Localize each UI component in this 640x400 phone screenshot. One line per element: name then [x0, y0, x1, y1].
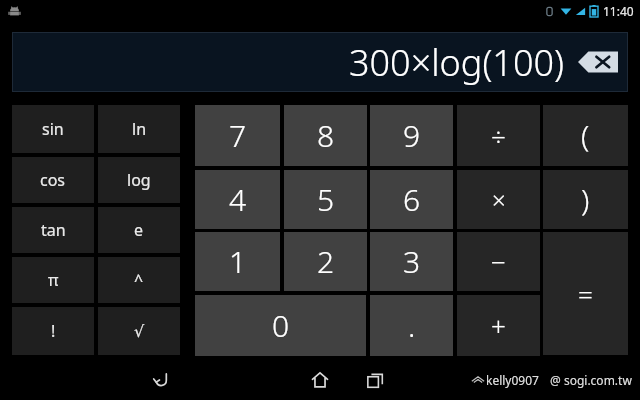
staticText: ÷ [491, 118, 506, 153]
staticText: 11:40 [603, 3, 634, 19]
button[interactable]: ( [543, 105, 628, 166]
staticText: × [492, 183, 506, 216]
staticText: ) [581, 179, 590, 220]
button[interactable]: cos [12, 157, 94, 203]
button[interactable]: ^ [98, 257, 180, 303]
button[interactable]: 9 [370, 105, 453, 166]
button[interactable]: 8 [284, 105, 367, 166]
staticText: 9 [403, 115, 421, 156]
button[interactable]: ln [98, 105, 180, 153]
button[interactable]: √ [98, 307, 180, 355]
staticText: √ [134, 322, 145, 341]
button[interactable]: × [457, 170, 540, 229]
staticText: 7 [229, 115, 247, 156]
staticText: 8 [317, 115, 335, 156]
staticText: 5 [317, 179, 335, 220]
staticText: sin [42, 118, 64, 140]
staticText: @ sogi.com.tw [550, 372, 632, 388]
button[interactable]: 2 [284, 232, 367, 291]
staticText: 1 [229, 241, 247, 282]
staticText: π [48, 269, 59, 291]
button[interactable]: 7 [195, 105, 280, 166]
button[interactable]: 6 [370, 170, 453, 229]
button[interactable]: = [543, 232, 628, 355]
staticText: ! [51, 320, 56, 342]
button[interactable]: Recent apps [353, 360, 397, 400]
button[interactable]: ÷ [457, 105, 540, 166]
button[interactable]: log [98, 157, 180, 203]
staticText: = [578, 276, 593, 311]
staticText: cos [40, 169, 66, 191]
staticText: 300×log(100) [349, 38, 564, 87]
button[interactable]: 5 [284, 170, 367, 229]
button[interactable]: 4 [195, 170, 280, 229]
button[interactable]: Backspace [578, 50, 618, 74]
button[interactable]: e [98, 207, 180, 253]
button[interactable]: + [457, 295, 540, 356]
staticText: 2 [317, 241, 335, 282]
button[interactable]: tan [12, 207, 94, 253]
button[interactable]: 1 [195, 232, 280, 291]
button[interactable]: Home [298, 360, 342, 400]
staticText: 4 [229, 179, 247, 220]
button[interactable]: Back [140, 360, 184, 400]
staticText: log [127, 169, 151, 191]
staticText: kelly0907 [486, 372, 539, 388]
button[interactable]: 0 [195, 295, 366, 356]
button[interactable]: π [12, 257, 94, 303]
staticText: e [134, 219, 144, 241]
button[interactable]: − [457, 232, 540, 291]
staticText: tan [41, 219, 66, 241]
button[interactable]: ! [12, 307, 94, 355]
button[interactable]: ) [543, 170, 628, 229]
staticText: . [408, 305, 416, 346]
staticText: ( [581, 115, 590, 156]
staticText: 6 [403, 179, 421, 220]
button[interactable]: 3 [370, 232, 453, 291]
staticText: − [491, 244, 506, 279]
staticText: 0 [272, 305, 290, 346]
staticText: 3 [403, 241, 421, 282]
staticText: ln [132, 118, 147, 140]
staticText: + [491, 308, 506, 343]
button[interactable]: sin [12, 105, 94, 153]
staticText: ^ [134, 269, 144, 291]
button[interactable]: . [370, 295, 453, 356]
